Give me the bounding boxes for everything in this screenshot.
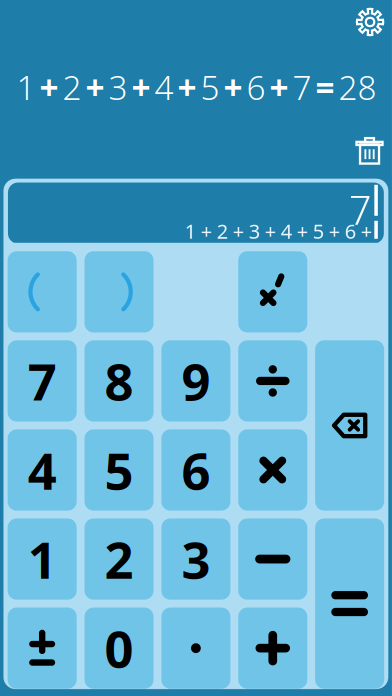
button[interactable]: 1: [8, 518, 77, 600]
staticText: 5: [200, 65, 219, 109]
button[interactable]: 6: [161, 429, 230, 511]
staticText: +: [177, 65, 196, 109]
button[interactable]: 9: [161, 340, 230, 421]
button[interactable]: 4: [8, 429, 77, 511]
button[interactable]: Equals: [315, 518, 384, 689]
staticText: 9: [181, 347, 210, 415]
staticText: =: [315, 65, 334, 109]
staticText: 1: [16, 65, 35, 109]
staticText: 6: [246, 65, 265, 109]
staticText: 4: [154, 65, 173, 109]
staticText: 5: [104, 436, 133, 504]
button[interactable]: Plus: [238, 607, 307, 689]
staticText: 8: [104, 347, 133, 415]
button[interactable]: Minus: [238, 518, 307, 600]
button[interactable]: Close parenthesis: [84, 251, 153, 332]
staticText: 6: [181, 436, 210, 504]
staticText: 0: [104, 614, 133, 682]
button[interactable]: Decimal point: [161, 607, 230, 689]
staticText: 1: [28, 525, 57, 593]
button[interactable]: Power: [238, 251, 307, 332]
staticText: 2: [62, 65, 81, 109]
button[interactable]: Backspace: [315, 340, 384, 511]
staticText: +: [131, 65, 150, 109]
staticText: 1 + 2 + 3 + 4 + 5 + 6 +: [185, 218, 372, 244]
staticText: 7: [349, 183, 372, 236]
staticText: 7: [292, 65, 311, 109]
button[interactable]: 8: [84, 340, 153, 421]
staticText: +: [85, 65, 104, 109]
button[interactable]: 7: [8, 340, 77, 421]
staticText: 28: [338, 65, 376, 109]
button[interactable]: Plus minus: [8, 607, 77, 689]
staticText: 7: [28, 347, 57, 415]
button[interactable]: Multiply: [238, 429, 307, 511]
staticText: +: [223, 65, 242, 109]
staticText: +: [269, 65, 288, 109]
staticText: +: [39, 65, 58, 109]
staticText: 3: [181, 525, 210, 593]
button[interactable]: Settings: [344, 0, 392, 48]
button[interactable]: 0: [84, 607, 153, 689]
staticText: 4: [28, 436, 57, 504]
button[interactable]: Divide: [238, 340, 307, 421]
button[interactable]: Clear: [344, 125, 392, 170]
button[interactable]: 5: [84, 429, 153, 511]
button[interactable]: Open parenthesis: [8, 251, 77, 332]
staticText: 3: [108, 65, 127, 109]
button[interactable]: 3: [161, 518, 230, 600]
staticText: 2: [104, 525, 133, 593]
button[interactable]: 2: [84, 518, 153, 600]
